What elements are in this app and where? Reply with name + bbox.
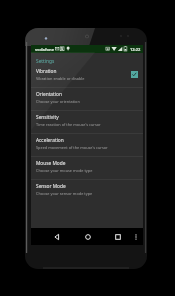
button[interactable]: Home — [83, 232, 93, 242]
staticText: Vibration — [36, 68, 57, 75]
button[interactable]: More options — [131, 232, 141, 242]
button[interactable]: Mouse Mode — [31, 157, 143, 180]
staticText: vodafone — [35, 47, 55, 53]
staticText: Mouse Mode — [36, 160, 66, 167]
staticText: Sensor Mode — [36, 183, 66, 190]
staticText: Speed movement of the mouse's cursor — [36, 145, 108, 150]
staticText: 12:22 — [130, 47, 141, 52]
staticText: Time reaction of the mouse's cursor — [36, 122, 101, 127]
button[interactable]: Recent apps — [113, 232, 123, 242]
staticText: Choose your sensor mode type — [36, 191, 93, 196]
button[interactable]: Sensitivity — [31, 111, 143, 134]
button[interactable]: Acceleration — [31, 134, 143, 157]
staticText: Orientation — [36, 91, 62, 98]
staticText: Settings — [36, 58, 55, 65]
button[interactable]: Vibration — [31, 65, 143, 88]
staticText: Sensitivity — [36, 114, 59, 121]
button[interactable]: Back — [52, 232, 62, 242]
staticText: Vibration enable or disable — [36, 76, 85, 81]
staticText: Choose your mouse mode type — [36, 168, 93, 173]
button[interactable]: Sensor Mode — [31, 180, 143, 203]
staticText: Acceleration — [36, 137, 64, 144]
staticText: Choose your orientation — [36, 99, 80, 104]
button[interactable]: Orientation — [31, 88, 143, 111]
